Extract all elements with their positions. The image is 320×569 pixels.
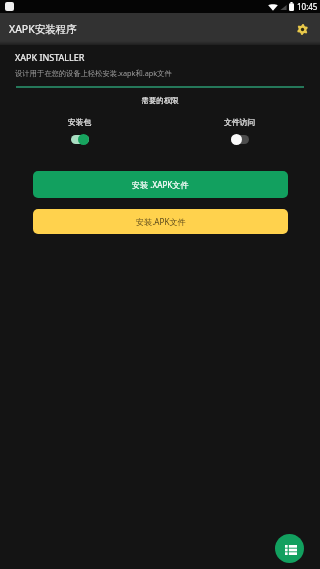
staticText: 安装.APK文件 <box>136 216 186 227</box>
staticText: XAPK安装程序 <box>9 22 77 36</box>
button[interactable] <box>71 134 89 145</box>
staticText: 需要的权限 <box>0 96 320 105</box>
staticText: XAPK INSTALLER <box>15 51 85 63</box>
staticText: 文件访问 <box>224 117 256 127</box>
button[interactable]: 安装.APK文件 <box>33 209 288 234</box>
staticText: 设计用于在您的设备上轻松安装.xapk和.apk文件 <box>15 68 172 78</box>
staticText: 10:45 <box>297 1 318 12</box>
button[interactable] <box>231 134 249 145</box>
button[interactable]: Show list <box>275 534 304 563</box>
staticText: 安装包 <box>68 117 92 127</box>
button[interactable]: 安装 .XAPK文件 <box>33 171 288 198</box>
button[interactable]: Settings <box>292 19 312 39</box>
staticText: 安装 .XAPK文件 <box>132 179 189 190</box>
